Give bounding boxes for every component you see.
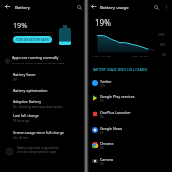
staticText: Phone has looked at apps and battery usa…: [12, 61, 65, 64]
staticText: Battery usage data is approximate and ca…: [17, 146, 63, 154]
staticText: Battery usage: [100, 4, 129, 10]
staticText: Adaptive Battery: [13, 99, 42, 104]
staticText: 0%: [162, 53, 166, 57]
staticText: Google News: [100, 126, 123, 131]
staticText: Battery: [15, 4, 31, 10]
staticText: On - Detecting when apps drain battery: [13, 105, 63, 109]
staticText: 5%: [100, 99, 104, 103]
staticText: OnePlus Launcher: [100, 110, 131, 115]
staticText: 4 hr, 42 min: [13, 136, 28, 140]
staticText: 2%: [100, 146, 104, 150]
staticText: 2%: [100, 162, 104, 166]
staticText: 19%: [95, 17, 111, 28]
staticText: Twitter: [100, 79, 112, 84]
button[interactable]: Last full charge: [0, 113, 85, 124]
button[interactable]: TURN ON BATTERY SAVER: [13, 36, 52, 43]
button[interactable]: Battery Saver: [0, 72, 85, 83]
staticText: Camera: [100, 157, 114, 162]
button[interactable]: Apps are running normally: [0, 53, 85, 65]
button[interactable]: Google Play services: [87, 90, 172, 105]
staticText: 18 hours ago: [13, 119, 30, 123]
staticText: Off: [13, 78, 17, 82]
staticText: 2%: [100, 131, 104, 135]
staticText: Chrome: [100, 141, 114, 146]
button[interactable]: Camera: [87, 153, 172, 168]
staticText: BATTERY USAGE SINCE FULL CHARGE: [93, 68, 148, 72]
staticText: 4%: [100, 115, 104, 119]
staticText: Battery optimization: [13, 88, 48, 93]
staticText: About 5 hr left until about 3:30 AM: [13, 30, 52, 33]
staticText: Apps are running normally: [12, 55, 59, 60]
button[interactable]: Back: [88, 1, 99, 12]
button[interactable]: Google News: [87, 122, 172, 137]
staticText: Google Play services: [100, 94, 135, 99]
button[interactable]: Adaptive Battery: [0, 99, 85, 110]
staticText: 10%: [100, 84, 106, 88]
button[interactable]: Search: [74, 2, 84, 12]
button[interactable]: Battery optimization: [0, 88, 85, 96]
button[interactable]: Twitter: [87, 75, 172, 90]
staticText: 100%: [158, 33, 165, 37]
staticText: 19%: [13, 20, 28, 30]
button[interactable]: More options: [162, 3, 171, 12]
staticText: Now 4 hr left: [132, 54, 148, 57]
staticText: 1 day, 11 hr ago: [92, 54, 111, 57]
staticText: TURN ON BATTERY SAVER: [16, 38, 49, 42]
staticText: 50%: [160, 43, 166, 47]
staticText: Screen usage since full charge: [13, 130, 64, 135]
staticText: Battery Saver: [13, 72, 36, 77]
button[interactable]: Chrome: [87, 137, 172, 152]
button[interactable]: Screen usage since full charge: [0, 130, 85, 141]
button[interactable]: Back: [2, 1, 13, 12]
button[interactable]: Search: [151, 2, 161, 12]
button[interactable]: OnePlus Launcher: [87, 106, 172, 121]
staticText: Last full charge: [13, 113, 39, 118]
